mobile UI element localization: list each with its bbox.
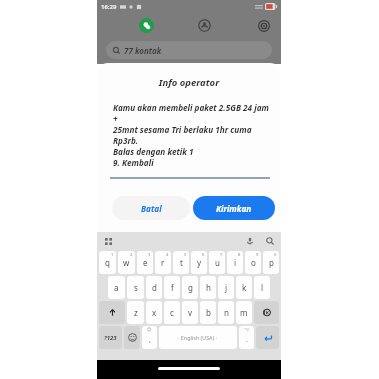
staticText: .: [246, 335, 248, 345]
button[interactable]: b: [200, 301, 216, 324]
button[interactable]: k: [236, 276, 252, 299]
staticText: p: [269, 257, 274, 268]
button[interactable]: 0: [263, 251, 279, 274]
button[interactable]: 4: [155, 251, 171, 274]
button[interactable]: · English (USA) ·: [159, 326, 237, 349]
staticText: h: [206, 282, 211, 293]
button[interactable]: s: [127, 276, 144, 299]
staticText: n: [224, 307, 229, 318]
button[interactable]: 77 kontak: [106, 41, 272, 59]
staticText: 5: [184, 252, 187, 258]
button[interactable]: Kirimkan: [193, 196, 275, 220]
staticText: v: [188, 307, 193, 318]
staticText: ,: [149, 335, 151, 345]
staticText: t: [180, 257, 183, 268]
button[interactable]: j: [218, 276, 234, 299]
staticText: ?123: [104, 334, 117, 342]
staticText: l: [261, 282, 264, 293]
button[interactable]: Settings: [255, 17, 272, 34]
staticText: u: [215, 257, 220, 268]
button[interactable]: z: [127, 301, 144, 324]
staticText: Kirimkan: [216, 203, 252, 214]
button[interactable]: l: [254, 276, 270, 299]
staticText: Batal: [141, 203, 162, 214]
button[interactable]: Emoji: [124, 326, 140, 349]
staticText: ☺: [147, 327, 152, 332]
button[interactable]: g: [182, 276, 198, 299]
staticText: m: [240, 307, 248, 318]
staticText: Kamu akan membeli paket 2.5GB 24 jam + 2…: [113, 102, 273, 168]
staticText: 9: [256, 252, 259, 258]
staticText: f: [171, 282, 174, 293]
button[interactable]: 7: [209, 251, 225, 274]
button[interactable]: 9: [245, 251, 261, 274]
staticText: r: [161, 257, 165, 268]
staticText: j: [225, 282, 228, 293]
staticText: o: [251, 257, 256, 268]
staticText: s: [134, 282, 138, 293]
staticText: b: [206, 307, 211, 318]
button[interactable]: c: [164, 301, 180, 324]
button[interactable]: m: [236, 301, 252, 324]
button[interactable]: 5: [173, 251, 189, 274]
button[interactable]: Batal: [112, 196, 190, 220]
staticText: 6: [202, 252, 205, 258]
button[interactable]: Dial: [139, 18, 154, 33]
button[interactable]: Toolbar: [102, 235, 114, 247]
staticText: e: [143, 257, 148, 268]
button[interactable]: x: [146, 301, 162, 324]
staticText: 77 kontak: [124, 45, 162, 56]
staticText: 16:29: [101, 3, 117, 11]
button[interactable]: Search: [264, 235, 276, 247]
button[interactable]: ⌥: [239, 326, 254, 349]
button[interactable]: f: [164, 276, 180, 299]
button[interactable]: 6: [191, 251, 207, 274]
button[interactable]: Enter: [256, 326, 279, 349]
staticText: i: [234, 257, 237, 268]
staticText: Info operator: [97, 76, 281, 89]
staticText: z: [134, 307, 138, 318]
staticText: 7: [220, 252, 223, 258]
button[interactable]: d: [146, 276, 162, 299]
button[interactable]: ☺: [142, 326, 157, 349]
button[interactable]: 3: [137, 251, 153, 274]
staticText: · English (USA) ·: [178, 334, 218, 341]
staticText: a: [114, 282, 119, 293]
staticText: d: [152, 282, 157, 293]
staticText: x: [152, 307, 157, 318]
staticText: 0: [274, 252, 277, 258]
button[interactable]: n: [218, 301, 234, 324]
staticText: g: [188, 282, 193, 293]
button[interactable]: Shift: [99, 301, 125, 324]
staticText: 3: [148, 252, 151, 258]
button[interactable]: v: [182, 301, 198, 324]
button[interactable]: 2: [118, 251, 135, 274]
button[interactable]: 1: [99, 251, 116, 274]
button[interactable]: Voice input: [244, 235, 256, 247]
staticText: k: [242, 282, 247, 293]
staticText: w: [123, 257, 130, 268]
staticText: q: [105, 257, 110, 268]
button[interactable]: h: [200, 276, 216, 299]
staticText: 2: [130, 252, 133, 258]
staticText: ⌥: [244, 327, 250, 332]
button[interactable]: ?123: [99, 326, 122, 349]
button[interactable]: Backspace: [254, 301, 279, 324]
button[interactable]: Account: [196, 17, 213, 34]
button[interactable]: 8: [227, 251, 243, 274]
staticText: c: [170, 307, 174, 318]
staticText: 8: [238, 252, 241, 258]
button[interactable]: a: [108, 276, 125, 299]
staticText: 4: [166, 252, 169, 258]
staticText: 1: [111, 252, 114, 258]
staticText: y: [197, 257, 202, 268]
